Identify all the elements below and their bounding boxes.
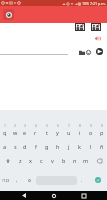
button[interactable]: o [85, 128, 96, 137]
staticText: 3 [24, 123, 26, 128]
button[interactable]: h [52, 142, 63, 151]
staticText: . [81, 177, 83, 184]
staticText: ?123 [2, 178, 10, 183]
staticText: l [90, 143, 92, 150]
staticText: d [23, 143, 27, 150]
staticText: y [56, 129, 59, 136]
button[interactable]: Emoji keyboard [24, 174, 34, 186]
button[interactable]: Send [94, 46, 105, 57]
button[interactable]: m [80, 156, 91, 165]
button[interactable]: u [63, 128, 74, 137]
staticText: v [51, 157, 54, 164]
staticText: i [79, 129, 81, 136]
staticText: 0 [101, 123, 103, 128]
button[interactable]: l [85, 142, 96, 151]
button[interactable]: Enter [91, 173, 104, 187]
staticText: j [68, 143, 70, 150]
button[interactable]: . [77, 174, 87, 186]
button[interactable]: Emoji [83, 47, 93, 57]
button[interactable]: j [63, 142, 74, 151]
staticText: 9 [90, 123, 92, 128]
staticText: , [16, 177, 18, 184]
button[interactable]: n [69, 156, 80, 165]
button[interactable]: q [0, 128, 10, 137]
button[interactable]: Home [47, 191, 60, 200]
staticText: 1 [4, 123, 6, 128]
button[interactable]: g [41, 142, 52, 151]
staticText: z [19, 157, 22, 164]
staticText: s [14, 143, 17, 150]
button[interactable]: s [10, 142, 20, 151]
staticText: e [23, 129, 27, 136]
staticText: 8 [79, 123, 81, 128]
staticText: c [40, 157, 43, 164]
button[interactable]: y [52, 128, 63, 137]
staticText: h [56, 143, 60, 150]
button[interactable]: z [15, 156, 25, 165]
button[interactable]: r [30, 128, 41, 137]
staticText: m [83, 157, 89, 164]
button[interactable]: Recent apps [77, 191, 90, 200]
button[interactable]: a [0, 142, 10, 151]
staticText: b [62, 157, 66, 164]
button[interactable]: t [41, 128, 52, 137]
staticText: x [29, 157, 32, 164]
staticText: g [45, 143, 49, 150]
staticText: a [3, 143, 7, 150]
staticText: k [78, 143, 81, 150]
button[interactable]: Shift [0, 156, 15, 165]
staticText: 6 [57, 123, 59, 128]
button[interactable]: x [25, 156, 36, 165]
button[interactable]: e [20, 128, 30, 137]
button[interactable]: , [12, 174, 22, 186]
staticText: p [100, 129, 104, 136]
staticText: u [67, 129, 71, 136]
button[interactable]: p [96, 128, 107, 137]
staticText: o [89, 129, 93, 136]
button[interactable]: f [30, 142, 41, 151]
button[interactable]: ?123 [0, 174, 11, 186]
button[interactable]: w [10, 128, 20, 137]
staticText: 10% 7:21 p.m. [82, 1, 106, 6]
staticText: ñ [100, 143, 104, 150]
button[interactable]: ñ [96, 142, 107, 151]
button[interactable]: v [47, 156, 58, 165]
button[interactable]: d [20, 142, 30, 151]
button[interactable]: Back [17, 191, 30, 200]
button[interactable]: b [58, 156, 69, 165]
staticText: 4 [35, 123, 37, 128]
staticText: 7 [68, 123, 70, 128]
staticText: 5 [46, 123, 48, 128]
staticText: w [13, 129, 18, 136]
staticText: n [73, 157, 77, 164]
button[interactable]: i [74, 128, 85, 137]
staticText: q [3, 129, 7, 136]
button[interactable]: Attach file [77, 47, 87, 57]
button[interactable]: k [74, 142, 85, 151]
staticText: 2 [14, 123, 16, 128]
button[interactable]: c [36, 156, 47, 165]
button[interactable]: Profile [3, 9, 14, 20]
staticText: f [35, 143, 37, 150]
staticText: t [46, 129, 48, 136]
staticText: r [34, 129, 37, 136]
button[interactable]: Backspace [91, 156, 107, 165]
